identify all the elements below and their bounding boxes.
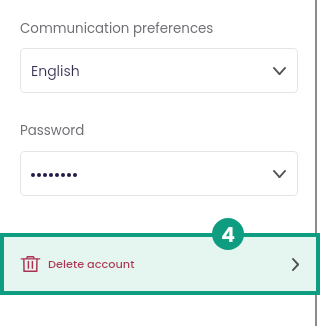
staticText: Delete account [48, 256, 135, 272]
button[interactable]: Delete [0, 233, 320, 295]
staticText: English [31, 61, 80, 81]
staticText: 4 [221, 220, 235, 249]
button[interactable]: English [20, 48, 298, 93]
other: Expand [273, 67, 286, 75]
button[interactable]: Expand [20, 151, 298, 196]
other: Delete [21, 256, 40, 272]
button[interactable]: Step 4 [212, 218, 244, 250]
other: Expand [273, 170, 286, 178]
staticText: Password [20, 121, 85, 140]
other: Open [292, 258, 299, 271]
staticText: Communication preferences [20, 19, 214, 38]
